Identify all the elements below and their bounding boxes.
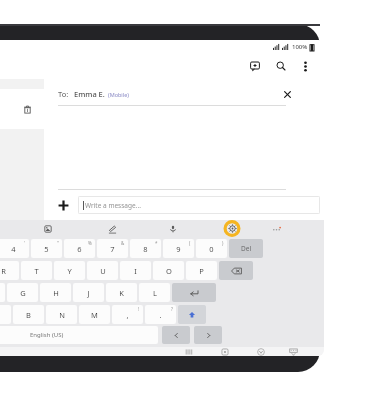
staticText: Emma E. <box>74 89 105 99</box>
button[interactable]: Handwriting <box>104 221 120 237</box>
button[interactable]: Y <box>54 261 85 280</box>
button[interactable]: H <box>40 283 71 302</box>
button[interactable]: Clear recipient <box>276 83 298 105</box>
button[interactable]: P <box>186 261 217 280</box>
staticText: 5 <box>44 244 49 254</box>
staticText: 0 <box>209 244 214 254</box>
button[interactable]: L <box>139 283 170 302</box>
staticText: L <box>153 288 157 298</box>
button[interactable]: Add attachment <box>52 194 74 216</box>
staticText: " <box>57 240 59 246</box>
button[interactable]: 5 <box>31 239 62 258</box>
button[interactable]: Stickers <box>40 221 56 237</box>
staticText: I <box>134 266 137 276</box>
staticText: English (US) <box>30 331 64 339</box>
button[interactable]: New message <box>242 53 268 79</box>
button[interactable]: Search <box>268 53 294 79</box>
button[interactable]: Voice input <box>165 221 181 237</box>
staticText: & <box>121 240 125 246</box>
button[interactable]: Shift <box>178 305 206 324</box>
button[interactable]: . <box>145 305 176 324</box>
staticText: ? <box>171 306 173 312</box>
staticText: R <box>1 266 6 276</box>
staticText: ! <box>138 306 140 312</box>
staticText: 6 <box>77 244 82 254</box>
staticText: M <box>91 310 98 320</box>
button[interactable]: Delete conversation <box>0 89 44 129</box>
button[interactable]: More options <box>294 55 316 77</box>
button[interactable]: Home <box>214 347 236 356</box>
staticText: 4 <box>11 244 16 254</box>
staticText: H <box>53 288 59 298</box>
button[interactable]: Del <box>229 239 263 258</box>
staticText: G <box>20 288 26 298</box>
staticText: N <box>59 310 65 320</box>
button[interactable]: J <box>73 283 104 302</box>
staticText: O <box>166 266 172 276</box>
button[interactable]: B <box>13 305 44 324</box>
staticText: ( <box>189 240 191 246</box>
staticText: . <box>159 310 162 320</box>
staticText: 100% <box>292 43 308 51</box>
button[interactable]: Keyboard settings <box>220 220 244 237</box>
staticText: ) <box>222 240 224 246</box>
staticText: % <box>88 240 92 246</box>
button[interactable]: Keyboard settings <box>282 347 304 356</box>
button[interactable]: Enter <box>172 283 216 302</box>
button[interactable]: U <box>87 261 118 280</box>
button[interactable]: Write a message... <box>78 196 320 214</box>
button[interactable]: Move cursor right <box>194 326 222 344</box>
button[interactable]: Move cursor left <box>162 326 190 344</box>
staticText: P <box>199 266 204 276</box>
staticText: 7 <box>110 244 115 254</box>
staticText: ' <box>24 240 26 246</box>
staticText: T <box>34 266 39 276</box>
staticText: Y <box>67 266 72 276</box>
button[interactable]: G <box>7 283 38 302</box>
button[interactable]: 7 <box>97 239 128 258</box>
button[interactable]: More keyboard options <box>268 221 284 237</box>
button[interactable]: , <box>112 305 143 324</box>
staticText: J <box>87 288 90 298</box>
button[interactable]: R <box>0 261 19 280</box>
button[interactable]: 8 <box>130 239 161 258</box>
button[interactable]: I <box>120 261 151 280</box>
button[interactable]: 4 <box>0 239 29 258</box>
staticText: U <box>100 266 106 276</box>
button[interactable]: N <box>46 305 77 324</box>
staticText: 9 <box>176 244 181 254</box>
button[interactable]: M <box>79 305 110 324</box>
button[interactable]: K <box>106 283 137 302</box>
button[interactable]: 9 <box>163 239 194 258</box>
button[interactable]: English (US) <box>0 326 158 344</box>
staticText: Del <box>241 244 252 253</box>
staticText: * <box>155 240 158 246</box>
staticText: 8 <box>143 244 148 254</box>
button[interactable]: T <box>21 261 52 280</box>
staticText: To: <box>58 89 69 99</box>
button[interactable]: Recents <box>178 347 200 356</box>
staticText: , <box>126 310 129 320</box>
button[interactable]: Hide keyboard <box>250 347 272 356</box>
button[interactable]: To: <box>44 83 324 105</box>
button[interactable]: O <box>153 261 184 280</box>
button[interactable]: 6 <box>64 239 95 258</box>
staticText: Write a message... <box>85 201 141 210</box>
staticText: B <box>26 310 31 320</box>
button[interactable]: Backspace <box>219 261 253 280</box>
staticText: K <box>119 288 124 298</box>
button[interactable]: 0 <box>196 239 227 258</box>
staticText: (Mobile) <box>108 91 129 98</box>
